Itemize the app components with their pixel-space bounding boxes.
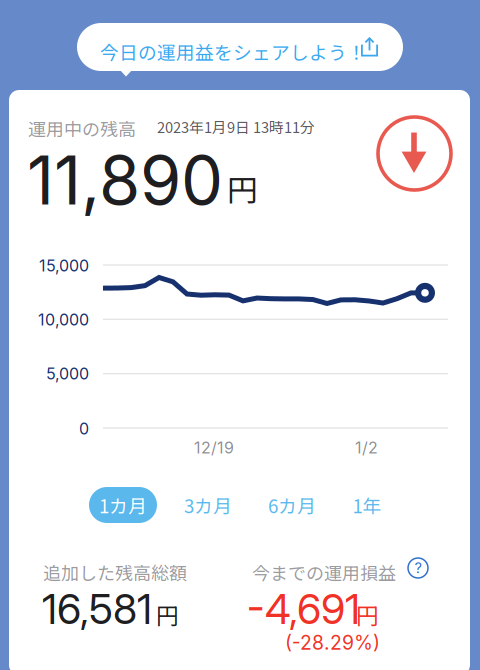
button[interactable]: 今日の運用益をシェアしよう！ <box>77 23 403 77</box>
staticText: 3カ月 <box>184 491 232 518</box>
staticText: 15,000 <box>39 256 89 275</box>
button[interactable]: ヘルプ <box>408 558 428 578</box>
staticText: 今までの運用損益 <box>252 559 396 585</box>
staticText: (-28.29%) <box>285 631 380 654</box>
staticText: 運用中の残高 <box>28 115 136 141</box>
staticText: 円 <box>156 598 179 631</box>
staticText: 12/19 <box>194 438 234 457</box>
button[interactable]: 1年 <box>342 487 392 523</box>
staticText: 10,000 <box>38 310 89 329</box>
button[interactable]: 1カ月 <box>89 487 157 523</box>
staticText: 2023年1月9日 13時11分 <box>157 116 315 137</box>
button[interactable]: 6カ月 <box>258 487 326 523</box>
staticText: 5,000 <box>46 364 89 383</box>
staticText: 追加した残高総額 <box>43 559 187 585</box>
staticText: ? <box>414 559 421 577</box>
button[interactable]: 3カ月 <box>174 487 242 523</box>
staticText: 1カ月 <box>99 491 147 518</box>
staticText: 6カ月 <box>268 491 316 518</box>
staticText: 今日の運用益をシェアしよう！ <box>100 38 366 65</box>
staticText: 11,890 <box>27 140 223 221</box>
staticText: 16,581 <box>42 584 152 634</box>
staticText: 1年 <box>352 491 381 518</box>
staticText: 円 <box>227 166 258 210</box>
staticText: 0 <box>79 419 89 438</box>
staticText: 1/2 <box>355 438 378 457</box>
staticText: -4,691 <box>247 584 360 634</box>
staticText: 円 <box>356 598 379 631</box>
